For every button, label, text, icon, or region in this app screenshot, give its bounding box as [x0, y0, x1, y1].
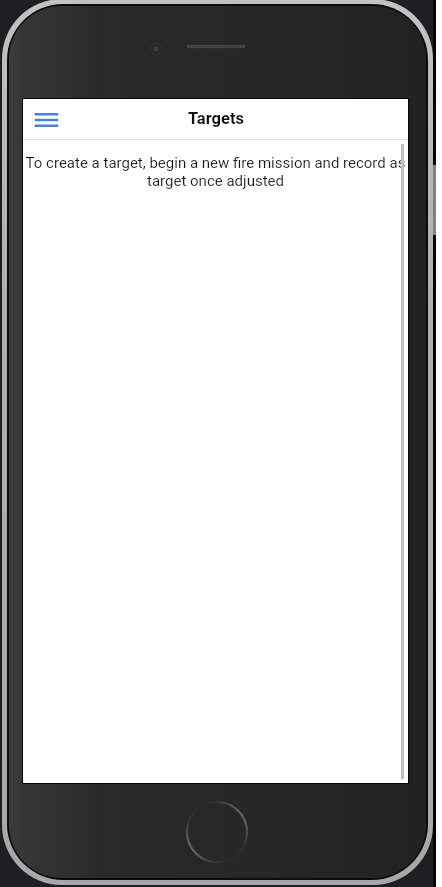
staticText: To create a target, begin a new fire mis… [23, 154, 408, 189]
staticText: Targets [188, 109, 244, 128]
button[interactable]: Open navigation menu [24, 99, 68, 139]
